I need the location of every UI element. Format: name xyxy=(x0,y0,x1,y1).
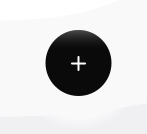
button[interactable]: Add xyxy=(45,30,111,96)
